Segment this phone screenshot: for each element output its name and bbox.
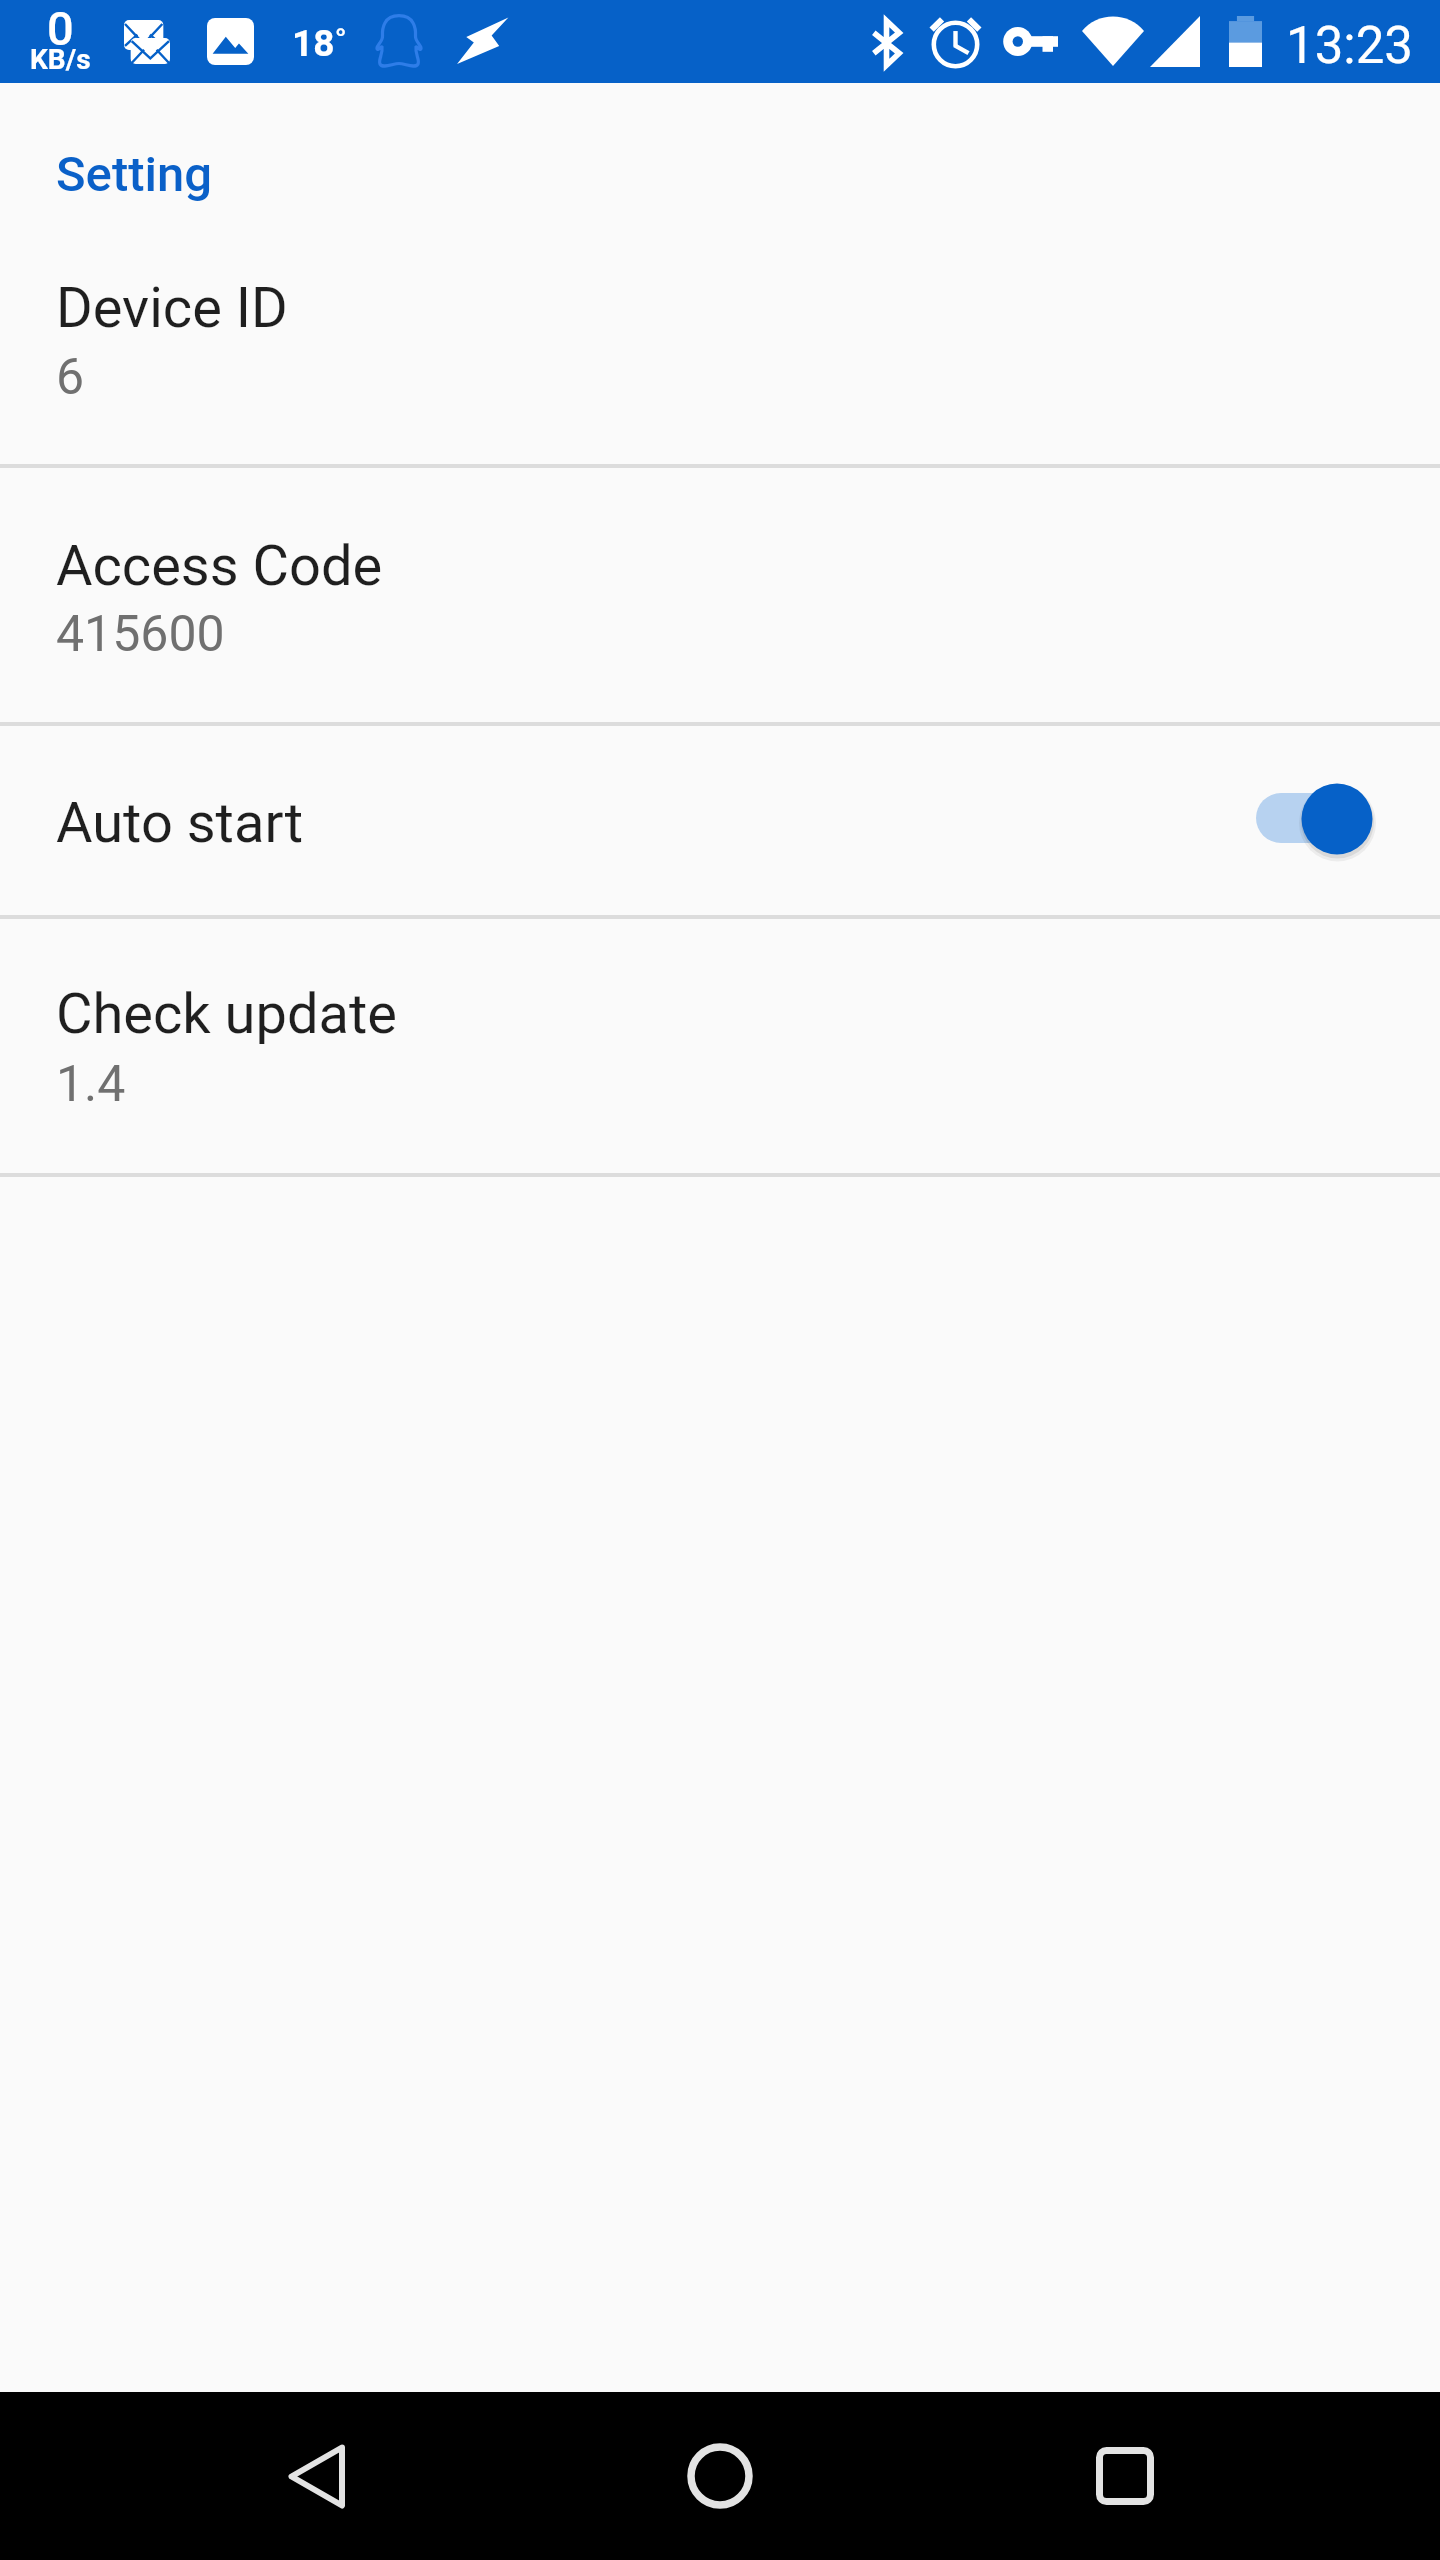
staticText: Auto start (56, 790, 304, 856)
button[interactable]: Back (196, 2392, 436, 2560)
staticText: KB/s (30, 43, 91, 76)
staticText: Device ID (56, 275, 288, 341)
staticText: 1.4 (56, 1055, 126, 1114)
staticText: Setting (56, 146, 213, 203)
button[interactable]: Auto start toggle, on (1250, 780, 1378, 858)
button[interactable]: Check update (0, 919, 1440, 1173)
button[interactable]: Home (600, 2392, 840, 2560)
staticText: Check update (56, 981, 397, 1047)
button[interactable]: Device ID (0, 83, 1440, 464)
staticText: 6 (56, 348, 85, 407)
button[interactable]: Recent apps (1005, 2392, 1245, 2560)
staticText: 18˚ (292, 22, 347, 65)
button[interactable]: Auto start (0, 726, 1440, 915)
staticText: 13:23 (1286, 16, 1414, 76)
button[interactable]: Access Code (0, 468, 1440, 722)
staticText: Access Code (56, 533, 383, 599)
staticText: 0 (47, 1, 74, 56)
staticText: 415600 (56, 605, 225, 664)
